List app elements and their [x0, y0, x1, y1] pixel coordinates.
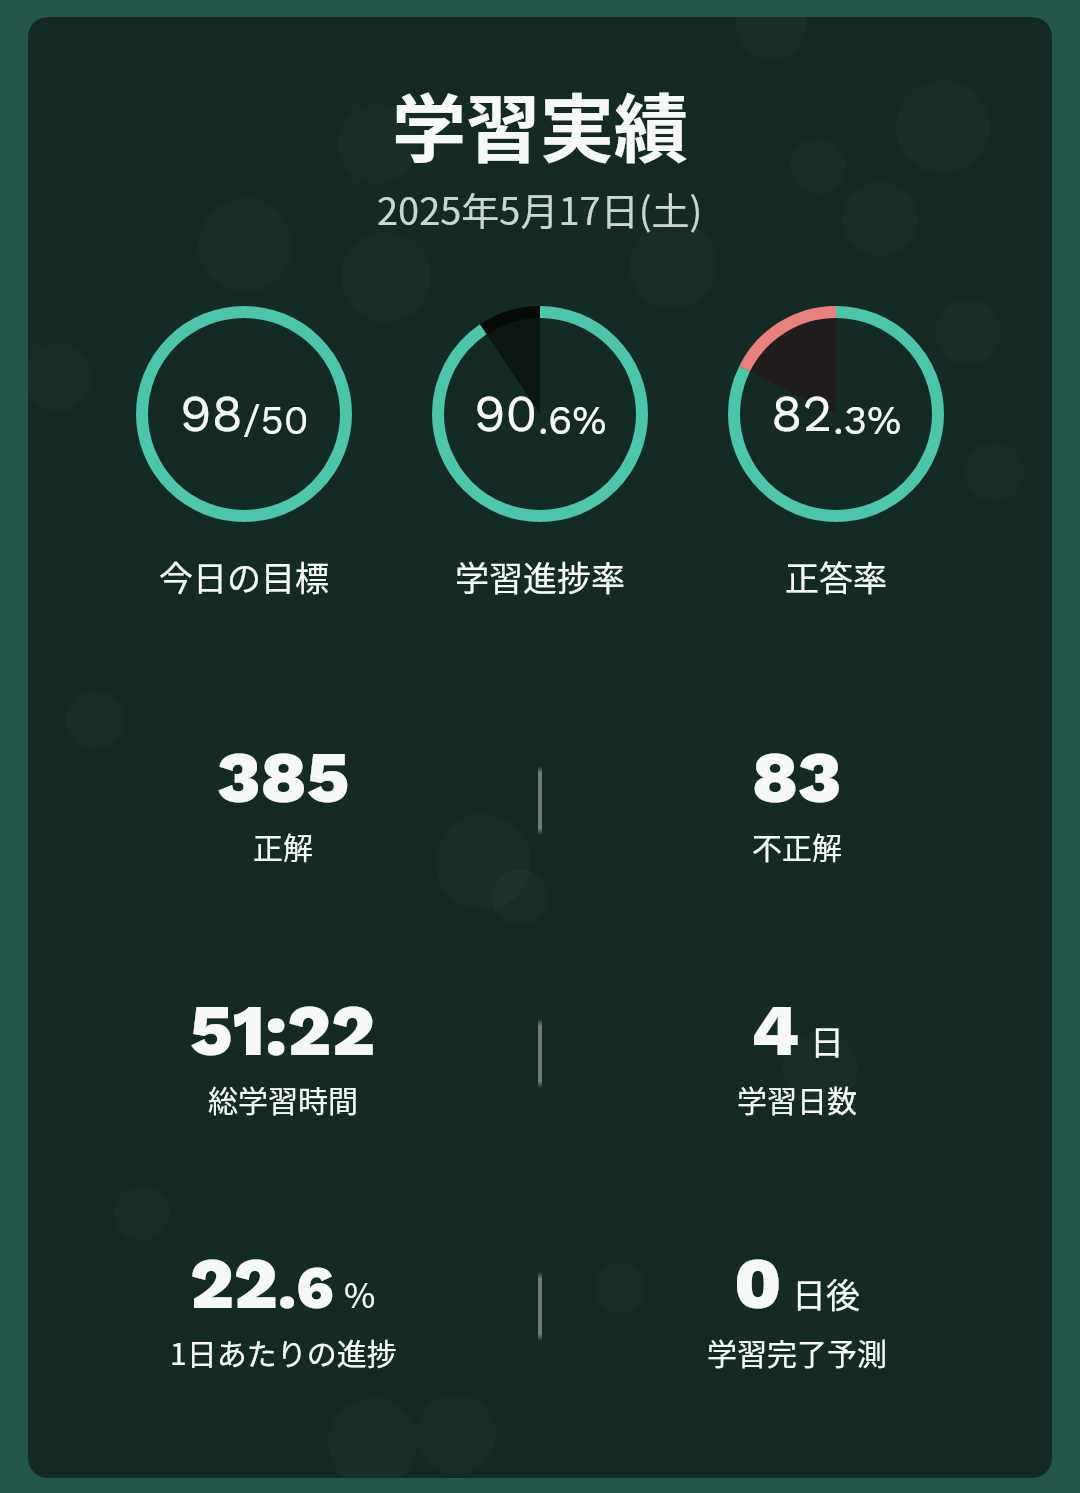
staticText: 22: [190, 1240, 278, 1326]
staticText: 98: [180, 384, 243, 444]
staticText: 90: [474, 384, 538, 444]
staticText: .6: [278, 1251, 334, 1323]
staticText: 日後: [792, 1269, 860, 1318]
staticText: 学習日数: [737, 1077, 857, 1120]
button[interactable]: 0: [542, 1240, 1052, 1373]
staticText: 学習完了予測: [707, 1330, 887, 1373]
staticText: 日: [810, 1016, 844, 1065]
staticText: 83: [752, 734, 842, 820]
staticText: 正解: [253, 824, 313, 867]
staticText: .6%: [538, 397, 607, 444]
staticText: .3%: [833, 397, 902, 444]
staticText: 学習進捗率: [455, 552, 625, 601]
staticText: 学習実績: [392, 70, 688, 177]
staticText: /50: [243, 397, 309, 444]
button[interactable]: 82: [728, 306, 944, 601]
button[interactable]: 22: [28, 1240, 538, 1373]
button[interactable]: 385: [28, 734, 538, 867]
staticText: 82: [771, 384, 833, 444]
button[interactable]: 98: [136, 306, 352, 601]
staticText: 51:22: [190, 987, 376, 1073]
button[interactable]: 4: [542, 987, 1052, 1120]
button[interactable]: 83: [542, 734, 1052, 867]
staticText: 385: [217, 734, 350, 820]
button[interactable]: 51:22: [28, 987, 538, 1120]
staticText: 今日の目標: [159, 552, 329, 601]
staticText: 1日あたりの進捗: [170, 1330, 397, 1373]
staticText: 正答率: [785, 552, 887, 601]
staticText: 総学習時間: [208, 1077, 358, 1120]
staticText: 不正解: [752, 824, 842, 867]
staticText: 0: [734, 1240, 782, 1326]
button[interactable]: 90: [432, 306, 648, 601]
staticText: 2025年5月17日(土): [377, 181, 703, 236]
staticText: %: [344, 1269, 376, 1318]
staticText: 4: [751, 987, 800, 1073]
